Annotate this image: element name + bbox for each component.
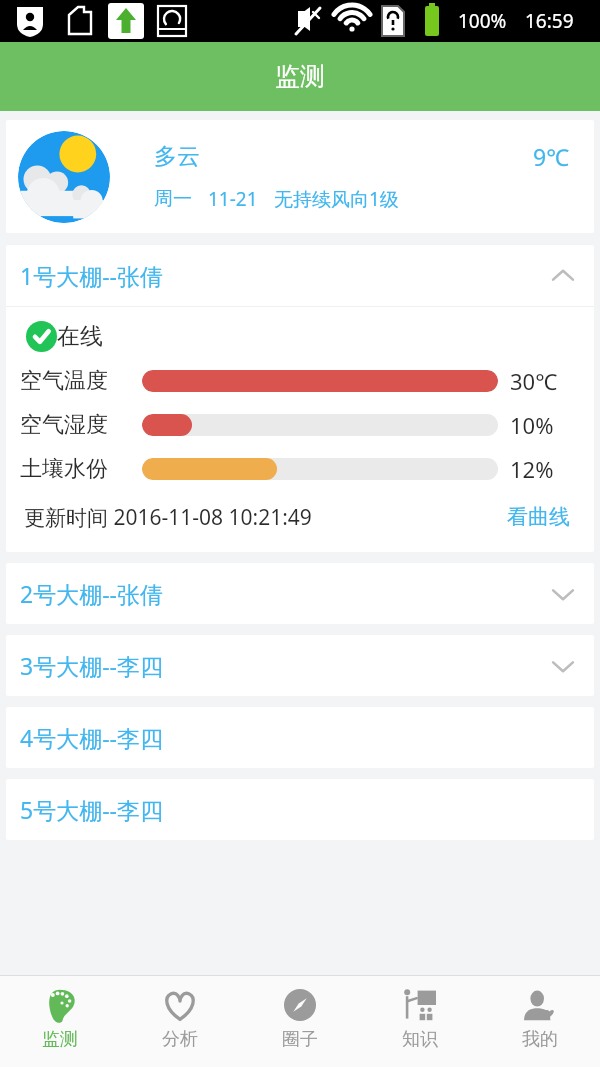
button[interactable]: 2号大棚--张倩 xyxy=(6,563,594,624)
staticText: 30℃ xyxy=(510,366,558,396)
staticText: 16:59 xyxy=(525,8,574,34)
staticText: 11-21 xyxy=(208,186,258,212)
staticText: 圈子 xyxy=(282,1028,318,1051)
staticText: 5号大棚--李四 xyxy=(20,794,163,825)
button[interactable]: 多云 xyxy=(6,120,594,233)
staticText: 多云 xyxy=(154,142,200,171)
staticText: 空气湿度 xyxy=(20,411,142,439)
staticText: 12% xyxy=(510,454,554,484)
staticText: 我的 xyxy=(522,1028,558,1051)
staticText: 10% xyxy=(510,410,554,440)
staticText: 监测 xyxy=(42,1028,78,1051)
button[interactable]: 看曲线 xyxy=(501,500,576,534)
staticText: 监测 xyxy=(275,61,325,92)
staticText: 2号大棚--张倩 xyxy=(20,578,163,609)
staticText: 1号大棚--张倩 xyxy=(20,260,163,291)
button[interactable]: 知识 xyxy=(360,976,480,1067)
staticText: 分析 xyxy=(162,1028,198,1051)
staticText: 在线 xyxy=(57,322,103,351)
staticText: 土壤水份 xyxy=(20,455,142,483)
button[interactable]: 4号大棚--李四 xyxy=(6,707,594,768)
staticText: 周一 xyxy=(154,187,192,211)
button[interactable]: 5号大棚--李四 xyxy=(6,779,594,840)
button[interactable]: 圈子 xyxy=(240,976,360,1067)
staticText: 4号大棚--李四 xyxy=(20,722,163,753)
staticText: 100% xyxy=(458,8,507,34)
staticText: 无持续风向1级 xyxy=(274,186,399,212)
staticText: 3号大棚--李四 xyxy=(20,650,163,681)
staticText: 空气温度 xyxy=(20,367,142,395)
button[interactable]: 分析 xyxy=(120,976,240,1067)
button[interactable]: 3号大棚--李四 xyxy=(6,635,594,696)
staticText: 看曲线 xyxy=(507,504,570,530)
staticText: 知识 xyxy=(402,1028,438,1051)
staticText: 更新时间 2016-11-08 10:21:49 xyxy=(24,503,312,532)
button[interactable]: 1号大棚--张倩 xyxy=(6,245,594,306)
staticText: 9℃ xyxy=(533,141,570,172)
button[interactable]: 监测 xyxy=(0,976,120,1067)
button[interactable]: 我的 xyxy=(480,976,600,1067)
